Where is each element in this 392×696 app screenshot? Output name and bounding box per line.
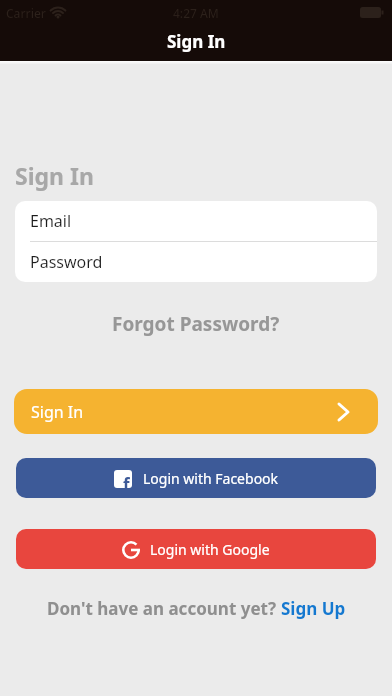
button[interactable]: Forgot Password? [112, 311, 280, 337]
button[interactable]: Password [30, 242, 377, 282]
staticText: Login with Google [150, 540, 270, 559]
staticText: Sign In [15, 160, 94, 191]
staticText: Sign In [167, 30, 226, 53]
button[interactable]: Sign Up [281, 597, 346, 620]
button[interactable]: Login with Google [16, 529, 376, 569]
staticText: Sign In [31, 401, 84, 423]
staticText: Carrier [6, 5, 46, 21]
staticText: Don't have an account yet? [47, 597, 281, 620]
button[interactable]: Email [30, 201, 377, 241]
staticText: f [123, 473, 130, 488]
staticText: 4:27 AM [173, 5, 219, 21]
button[interactable]: Sign In [14, 389, 378, 434]
staticText: Login with Facebook [143, 469, 279, 488]
staticText: Password [30, 251, 103, 273]
staticText: Email [30, 210, 72, 232]
button[interactable]: f [16, 458, 376, 498]
